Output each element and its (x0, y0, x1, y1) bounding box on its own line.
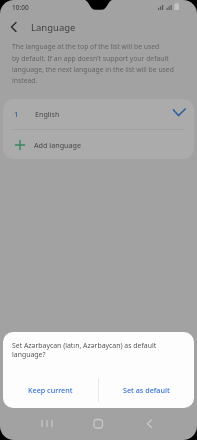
button[interactable] (0, 14, 26, 40)
button[interactable]: Language (0, 14, 197, 40)
staticText: 1 (14, 109, 19, 119)
button[interactable]: Keep current (3, 376, 98, 404)
staticText: Set as default (123, 385, 170, 395)
staticText: English (35, 109, 60, 119)
staticText: language? (12, 350, 46, 359)
staticText: Language (31, 21, 76, 34)
button[interactable]: Set as default (99, 376, 194, 404)
staticText: 10:00 (12, 3, 29, 12)
staticText: Add language (34, 140, 81, 150)
button[interactable]: Add language (3, 130, 194, 159)
staticText: Set Azərbaycan (latın, Azərbaycan) as de… (12, 341, 157, 350)
button[interactable]: 1 (3, 99, 194, 129)
staticText: Keep current (28, 385, 73, 395)
staticText: The language at the top of the list will… (12, 42, 174, 85)
